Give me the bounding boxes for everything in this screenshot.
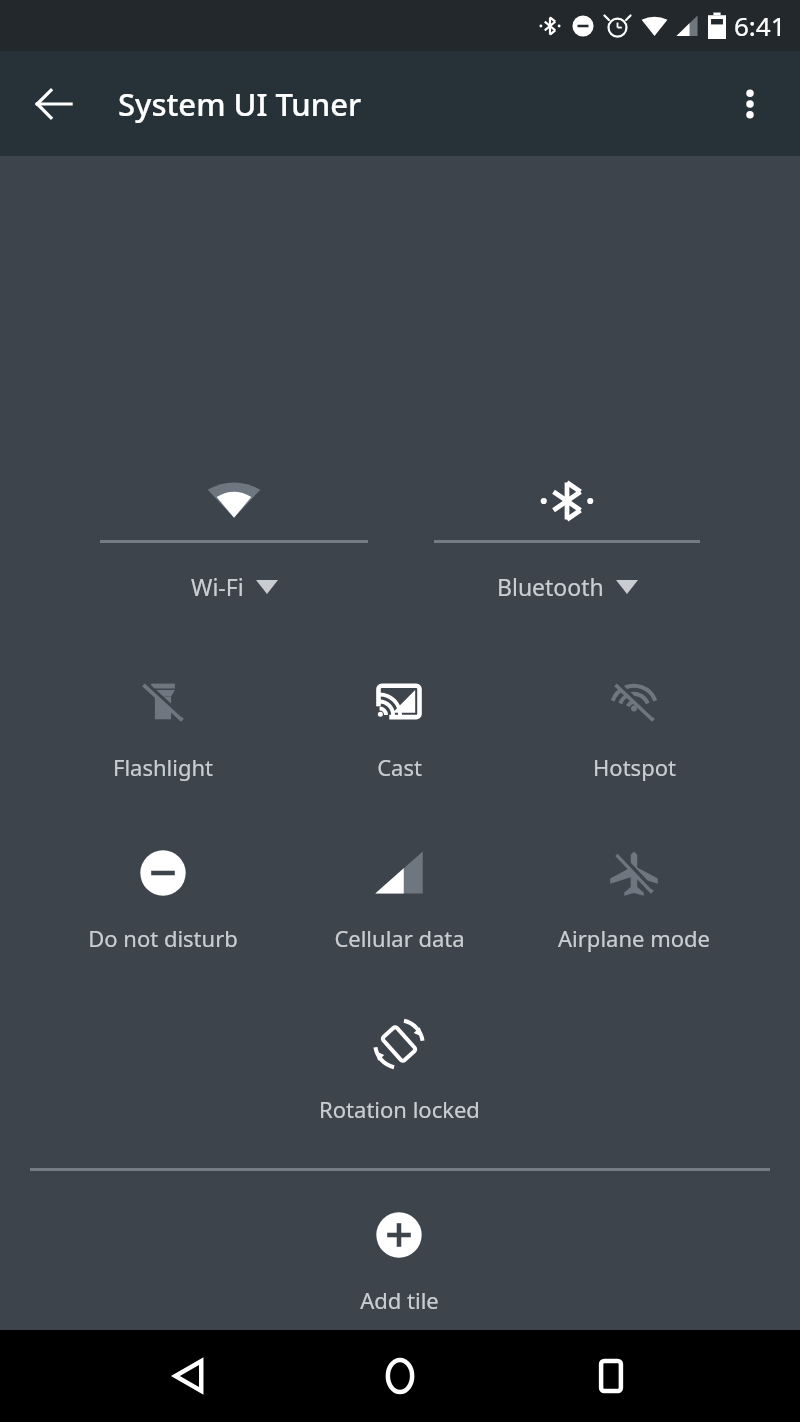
button[interactable]: Back [18, 68, 90, 140]
button[interactable]: Flashlight [63, 661, 263, 792]
button[interactable]: Cast [299, 661, 499, 792]
button[interactable]: Cellular data [299, 832, 499, 963]
staticText: Do not disturb [88, 923, 238, 953]
button[interactable]: Airplane mode [534, 832, 734, 963]
staticText: Cellular data [334, 923, 465, 953]
staticText: Bluetooth [497, 571, 604, 602]
staticText: Wi-Fi [191, 571, 244, 602]
staticText: 6:41 [734, 8, 786, 43]
button[interactable]: Home [354, 1330, 446, 1422]
button[interactable]: More options [714, 68, 786, 140]
button[interactable]: Do not disturb [63, 832, 263, 963]
button[interactable]: Rotation locked [299, 1003, 499, 1134]
button[interactable]: Add tile [299, 1194, 499, 1325]
staticText: Flashlight [113, 752, 213, 782]
button[interactable]: Recent apps [565, 1330, 657, 1422]
staticText: System UI Tuner [118, 83, 362, 125]
button[interactable]: Hotspot [534, 661, 734, 792]
staticText: Hotspot [593, 752, 676, 782]
button[interactable]: Wi-Fi [100, 453, 368, 593]
staticText: Add tile [360, 1285, 439, 1315]
button[interactable]: Back [143, 1330, 235, 1422]
staticText: Airplane mode [558, 923, 710, 953]
staticText: Cast [377, 752, 422, 782]
staticText: Rotation locked [319, 1094, 480, 1124]
button[interactable]: Bluetooth [434, 453, 700, 593]
